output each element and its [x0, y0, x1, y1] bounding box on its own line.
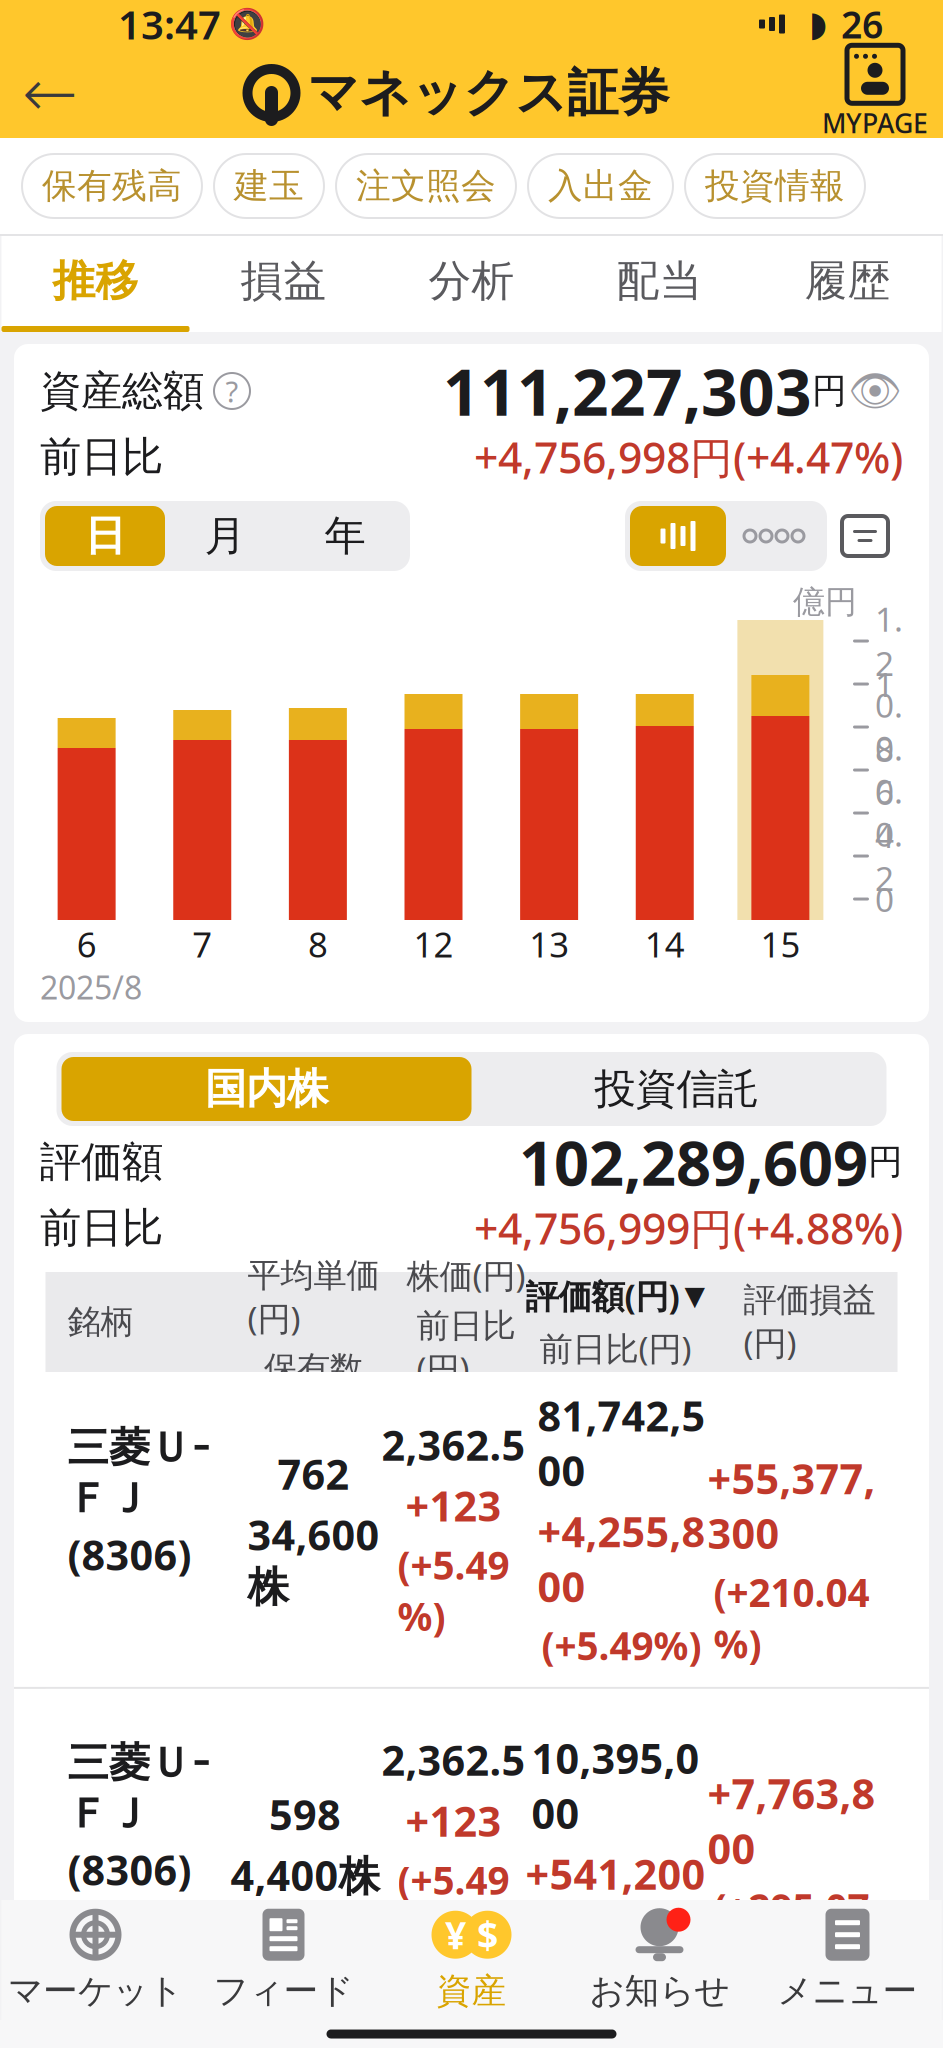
staticText: 前日比(円) [416, 1305, 515, 1391]
staticText: 6 [77, 921, 97, 967]
staticText: フィード [213, 1970, 353, 2012]
staticText: 円 [868, 1141, 903, 1183]
staticText: 81,742,500 [537, 1388, 705, 1498]
button[interactable]: Back [0, 49, 100, 137]
staticText: 14 [645, 921, 685, 967]
staticText: 0.6 [875, 726, 903, 814]
staticText: 投資情報 [705, 165, 845, 207]
staticText: (+5.49%) [397, 1854, 509, 1957]
button[interactable]: フィード [189, 1900, 377, 2020]
staticText: 評価額 [40, 1137, 163, 1187]
staticText: 15 [760, 921, 800, 967]
staticText: 資産総額 [40, 366, 204, 416]
button[interactable]: 月 [165, 506, 285, 566]
staticText: 34,600株 [247, 1507, 379, 1613]
staticText: 8 [308, 921, 328, 967]
staticText: 2,362.5 [381, 1732, 525, 1787]
staticText: +4,255,800 [537, 1504, 705, 1614]
button[interactable]: 国内株 [61, 1057, 471, 1121]
button[interactable]: Comments [827, 501, 903, 571]
staticText: +123 [405, 1478, 501, 1533]
staticText: 建玉 [234, 165, 304, 207]
staticText: 保有残高 [42, 165, 182, 207]
staticText: 資産 [436, 1970, 506, 2012]
button[interactable]: 損益 [189, 236, 377, 332]
staticText: 三菱ＵＦＪ [67, 1737, 199, 1839]
staticText: 前日比(円) [539, 1326, 691, 1370]
button[interactable]: マーケット [1, 1900, 189, 2020]
button[interactable]: 分析 [377, 236, 565, 332]
staticText: ¥ [445, 1910, 466, 1959]
staticText: (+5.49%) [535, 1907, 695, 1958]
staticText: 配当 [616, 255, 702, 307]
staticText: 注文照会 [356, 165, 496, 207]
staticText: 102,289,609 [519, 1121, 868, 1203]
button[interactable]: My Page [815, 47, 935, 139]
staticText: +541,200 [525, 1846, 705, 1901]
staticText: 1 [875, 662, 894, 706]
staticText: 13:47 [118, 0, 221, 50]
staticText: 👁 [848, 367, 902, 415]
staticText: 2025/8 [40, 966, 142, 1008]
button[interactable]: 入出金 [528, 154, 673, 218]
staticText: 投資信託 [594, 1064, 758, 1114]
staticText: 年 [324, 511, 365, 561]
staticText: (+210.04%) [713, 1566, 869, 1669]
button[interactable]: ¥ [377, 1900, 565, 2020]
staticText: $ [477, 1910, 498, 1959]
staticText: 月 [204, 511, 245, 561]
staticText: 銘柄 [67, 1301, 133, 1342]
staticText: ▼ [684, 1281, 705, 1311]
staticText: 評価額(円) [525, 1274, 679, 1318]
button[interactable]: お知らせ [565, 1900, 753, 2020]
staticText: 履歴 [804, 255, 890, 307]
staticText: メニュー [777, 1970, 917, 2012]
staticText: MYPAGE [822, 105, 928, 141]
staticText: 2,362.5 [381, 1417, 525, 1472]
button[interactable]: 建玉 [214, 154, 324, 218]
staticText: 0.2 [875, 812, 903, 900]
staticText: 円 [812, 370, 847, 412]
staticText: お知らせ [589, 1970, 729, 2012]
button[interactable]: 投資情報 [685, 154, 865, 218]
staticText: 入出金 [548, 165, 653, 207]
staticText: (+5.49%) [541, 1620, 701, 1671]
button[interactable]: Hide balance [847, 366, 903, 416]
button[interactable]: メニュー [753, 1900, 941, 2020]
staticText: 推移 [52, 255, 138, 307]
button[interactable]: 推移 [1, 236, 189, 332]
staticText: 7 [192, 921, 212, 967]
button[interactable]: 保有残高 [22, 154, 202, 218]
staticText: 保有数 [264, 1348, 363, 1389]
staticText: 13 [529, 921, 569, 967]
button[interactable]: 三菱ＵＦＪ [45, 1372, 897, 1687]
staticText: ← [22, 55, 78, 131]
staticText: +4,756,998円(+4.47%) [474, 429, 903, 485]
button[interactable]: 日 [45, 506, 165, 566]
button[interactable]: 三菱ＵＦＪ [45, 1689, 897, 2000]
staticText: 株価(円) [406, 1253, 525, 1298]
staticText: +7,763,800 [707, 1766, 875, 1876]
staticText: +4,756,999円(+4.88%) [474, 1200, 903, 1256]
staticText: 平均単価(円) [247, 1255, 379, 1340]
staticText: (+5.49%) [397, 1539, 509, 1642]
staticText: 598 [269, 1787, 341, 1842]
staticText: 日 [84, 511, 125, 561]
staticText: マーケット [8, 1970, 183, 2012]
staticText: +55,377,300 [707, 1451, 875, 1560]
staticText: 前日比 [40, 432, 163, 482]
button[interactable]: 配当 [565, 236, 753, 332]
button[interactable]: 投資信託 [471, 1057, 881, 1121]
staticText: ◗ [809, 4, 827, 44]
button[interactable]: 年 [285, 506, 405, 566]
button[interactable]: 注文照会 [336, 154, 516, 218]
staticText: 26 [841, 0, 883, 49]
staticText: 111,227,303 [443, 348, 812, 433]
staticText: ? [225, 371, 238, 410]
button[interactable]: Line chart [726, 506, 822, 566]
button[interactable]: Bar chart [630, 506, 726, 566]
button[interactable]: 履歴 [753, 236, 941, 332]
staticText: (8306) [67, 1527, 191, 1582]
